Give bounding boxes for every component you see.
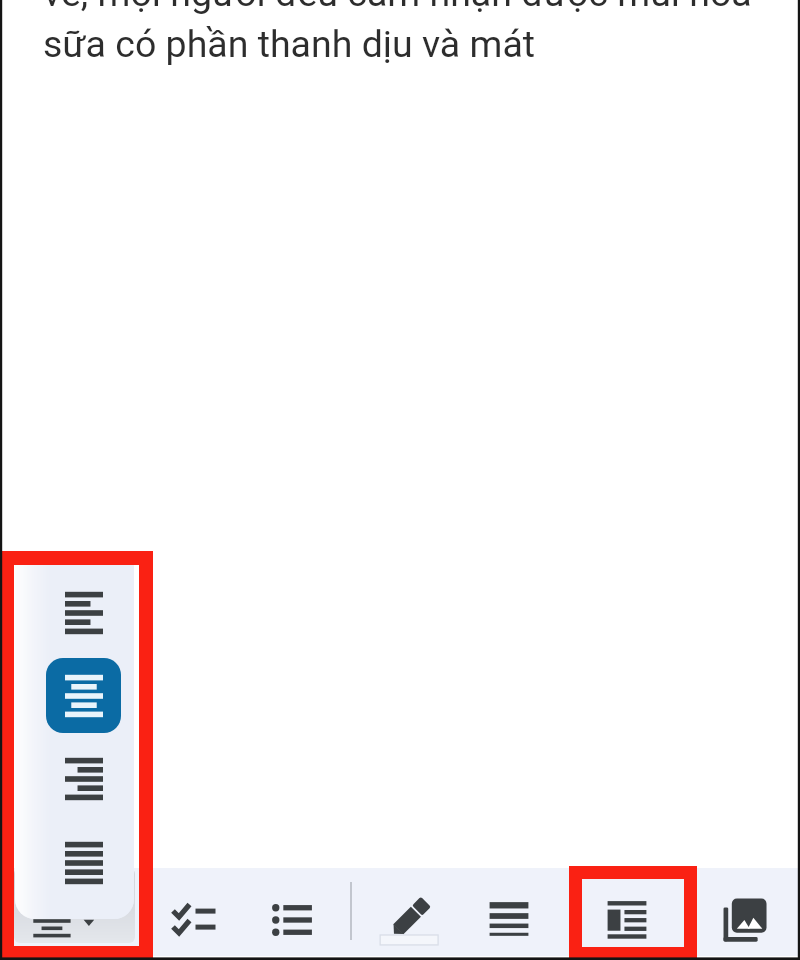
- button[interactable]: Align center: [46, 658, 121, 733]
- button[interactable]: Align left: [46, 575, 121, 650]
- button[interactable]: Justify: [46, 825, 121, 900]
- button[interactable]: Checklist: [150, 877, 238, 960]
- button[interactable]: Bulleted list: [248, 877, 336, 960]
- button[interactable]: Paragraph style: [583, 877, 671, 960]
- staticText: sữa có phần thanh dịu và mát: [43, 22, 536, 66]
- staticText: vẽ, mọi người đều cảm nhận được mùi hoa: [43, 0, 752, 15]
- button[interactable]: Paragraph alignment: [14, 868, 135, 943]
- button[interactable]: Draw: [366, 877, 454, 960]
- button[interactable]: Insert image: [702, 877, 790, 960]
- button[interactable]: Text format: [465, 877, 553, 960]
- button[interactable]: Align right: [46, 741, 121, 816]
